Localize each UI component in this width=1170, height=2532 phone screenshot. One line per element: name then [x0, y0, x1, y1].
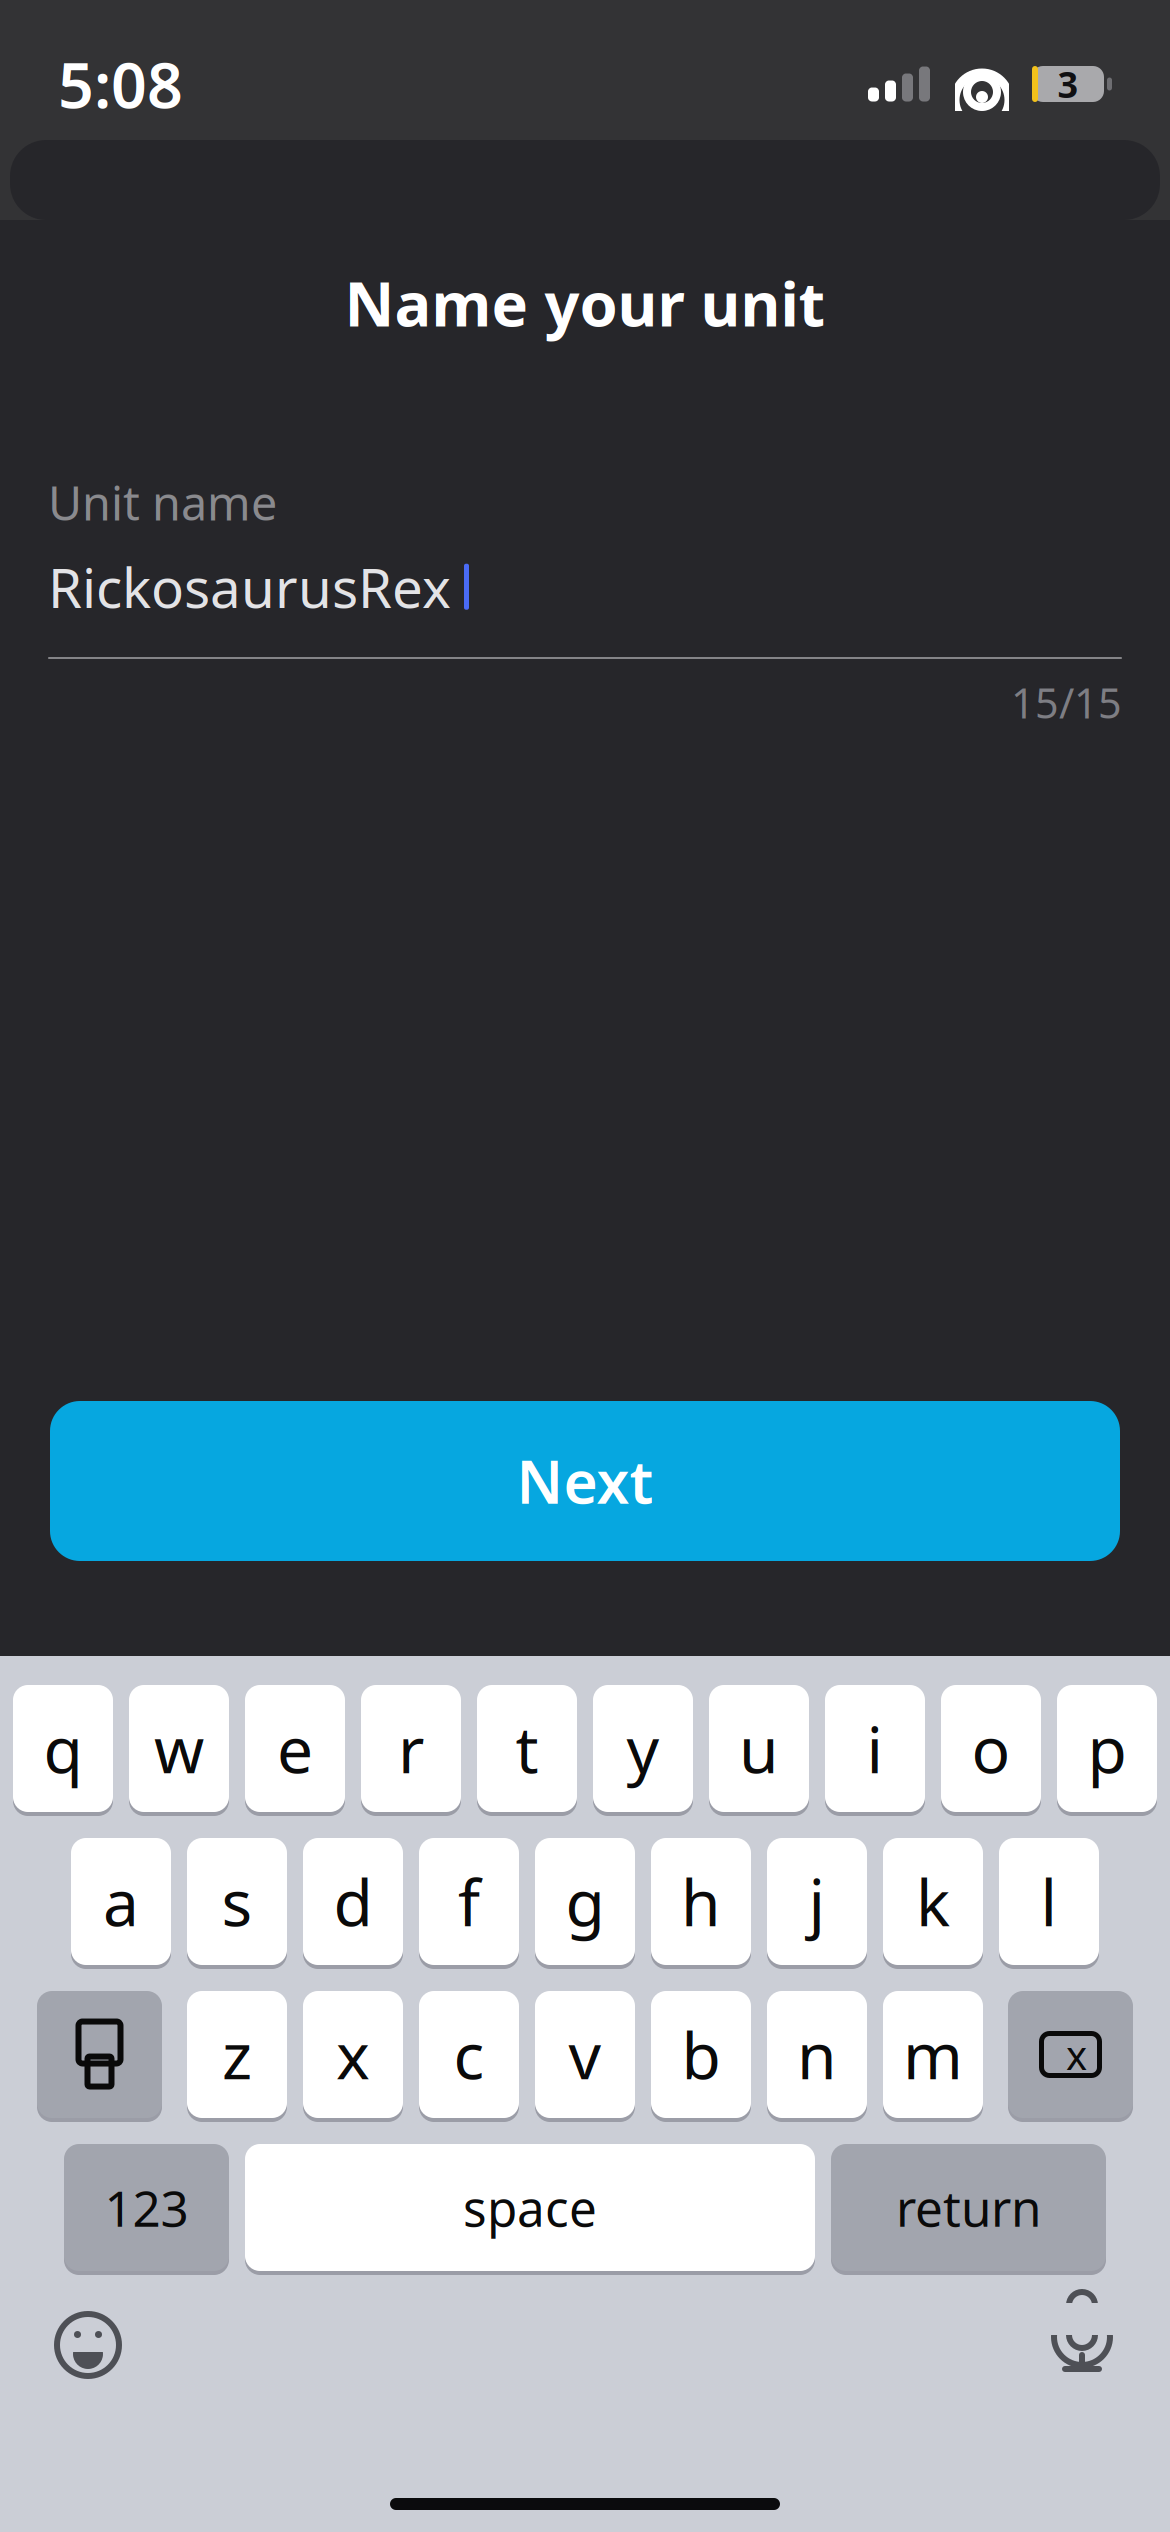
button[interactable]: e: [245, 1683, 345, 1814]
staticText: n: [797, 2012, 837, 2097]
button[interactable]: Shift: [37, 1989, 162, 2120]
staticText: 123: [104, 2175, 188, 2240]
staticText: s: [221, 1859, 252, 1944]
staticText: a: [103, 1859, 139, 1944]
button[interactable]: b: [651, 1989, 751, 2120]
staticText: c: [453, 2012, 484, 2097]
staticText: f: [458, 1859, 480, 1944]
staticText: i: [866, 1706, 883, 1791]
button[interactable]: j: [767, 1836, 867, 1967]
staticText: RickosaurusRex: [48, 550, 451, 623]
staticText: w: [154, 1706, 204, 1791]
staticText: r: [398, 1706, 424, 1791]
staticText: b: [681, 2012, 720, 2097]
button[interactable]: t: [477, 1683, 577, 1814]
staticText: t: [515, 1706, 538, 1791]
staticText: o: [971, 1706, 1010, 1791]
staticText: z: [222, 2012, 252, 2097]
button[interactable]: Dictation: [1037, 2295, 1127, 2395]
button[interactable]: space: [245, 2142, 815, 2273]
button[interactable]: y: [593, 1683, 693, 1814]
staticText: e: [277, 1706, 313, 1791]
button[interactable]: return: [831, 2142, 1106, 2273]
button[interactable]: s: [187, 1836, 287, 1967]
button[interactable]: z: [187, 1989, 287, 2120]
staticText: 5:08: [58, 42, 183, 126]
button[interactable]: w: [129, 1683, 229, 1814]
staticText: m: [903, 2012, 963, 2097]
staticText: p: [1087, 1706, 1126, 1791]
staticText: return: [896, 2175, 1041, 2240]
button[interactable]: x: [303, 1989, 403, 2120]
staticText: 3: [1057, 60, 1078, 108]
staticText: v: [568, 2012, 601, 2097]
button[interactable]: n: [767, 1989, 867, 2120]
staticText: u: [739, 1706, 779, 1791]
staticText: h: [681, 1859, 721, 1944]
button[interactable]: c: [419, 1989, 519, 2120]
button[interactable]: p: [1057, 1683, 1157, 1814]
staticText: 15/15: [1011, 675, 1122, 730]
button[interactable]: h: [651, 1836, 751, 1967]
button[interactable]: k: [883, 1836, 983, 1967]
staticText: y: [626, 1706, 659, 1791]
button[interactable]: q: [13, 1683, 113, 1814]
staticText: k: [916, 1859, 950, 1944]
staticText: x: [1066, 2028, 1087, 2081]
button[interactable]: Next: [0, 1401, 1170, 1561]
staticText: q: [43, 1706, 82, 1791]
button[interactable]: l: [999, 1836, 1099, 1967]
staticText: x: [336, 2012, 370, 2097]
staticText: l: [1040, 1859, 1057, 1944]
staticText: j: [808, 1859, 825, 1944]
button[interactable]: Emoji: [43, 2300, 133, 2390]
staticText: Unit name: [48, 471, 277, 533]
staticText: Name your unit: [344, 262, 825, 343]
button[interactable]: g: [535, 1836, 635, 1967]
button[interactable]: 123: [64, 2142, 229, 2273]
staticText: g: [565, 1859, 604, 1944]
button[interactable]: u: [709, 1683, 809, 1814]
staticText: d: [333, 1859, 372, 1944]
button[interactable]: r: [361, 1683, 461, 1814]
button[interactable]: d: [303, 1836, 403, 1967]
button[interactable]: m: [883, 1989, 983, 2120]
staticText: Next: [516, 1442, 653, 1520]
button[interactable]: a: [71, 1836, 171, 1967]
button[interactable]: f: [419, 1836, 519, 1967]
staticText: space: [463, 2175, 597, 2240]
button[interactable]: Delete: [1008, 1989, 1133, 2120]
button[interactable]: v: [535, 1989, 635, 2120]
button[interactable]: i: [825, 1683, 925, 1814]
button[interactable]: o: [941, 1683, 1041, 1814]
